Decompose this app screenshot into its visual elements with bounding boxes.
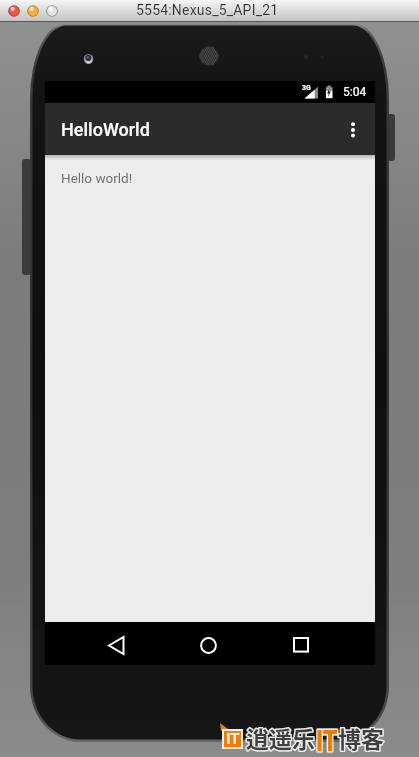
staticText: IT: [316, 723, 338, 757]
staticText: IT: [226, 730, 240, 748]
staticText: 博客: [338, 721, 384, 754]
button[interactable]: [285, 630, 317, 660]
staticText: 5554:Nexus_5_API_21: [136, 2, 279, 18]
staticText: IT: [316, 723, 338, 757]
staticText: HelloWorld: [61, 119, 150, 140]
staticText: 5:04: [343, 85, 367, 99]
staticText: 逍遥乐: [246, 721, 315, 754]
staticText: 博客: [338, 721, 384, 754]
staticText: Hello world!: [61, 170, 133, 186]
staticText: 逍遥乐: [246, 721, 315, 754]
button[interactable]: [100, 630, 132, 660]
button[interactable]: IT: [222, 729, 243, 749]
button[interactable]: [192, 630, 224, 660]
staticText: 3G: [302, 84, 311, 92]
button[interactable]: [343, 109, 363, 149]
